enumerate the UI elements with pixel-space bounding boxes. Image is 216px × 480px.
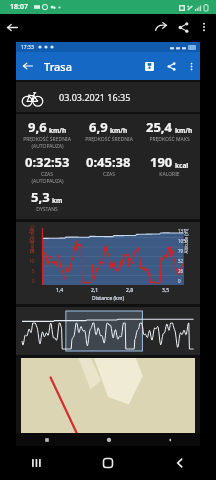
staticText: 52 [178,258,184,264]
button[interactable]: Share [160,55,182,77]
staticText: CZAS [103,171,115,178]
button[interactable]: Share [172,16,194,38]
staticText: 2,1 [91,287,99,294]
button[interactable]: 6,9 [78,118,139,143]
staticText: km/h [49,126,67,135]
button[interactable]: 0:45:38 [78,153,139,178]
staticText: (AUTOPAUZA) [31,143,64,150]
staticText: 0 [178,278,181,284]
button[interactable]: 0:32:53 [16,153,78,185]
button[interactable]: 25 [16,222,200,304]
button[interactable]: Navigate up [16,54,40,78]
button[interactable]: 5,3 [16,188,78,213]
button[interactable]: Back [0,15,24,39]
button[interactable]: Back [144,446,216,480]
staticText: 18:07 [10,2,28,12]
staticText: 9,6 [28,118,47,136]
staticText: 20 [29,238,35,244]
button[interactable]: 9,6 [16,118,78,150]
staticText: 5 [32,268,35,274]
staticText: (AUTOPAUZA) [31,178,64,185]
button[interactable]: Home [72,446,144,480]
button[interactable]: Back [139,433,200,446]
staticText: 26 [178,268,184,274]
staticText: 15 [29,248,35,254]
staticText: km [52,196,63,205]
button[interactable]: Forward [150,16,172,38]
button[interactable] [16,307,200,355]
staticText: PRĘDKOŚĆ ŚREDNIA [23,136,71,143]
staticText: Trasa [44,59,72,74]
staticText: 1,4 [56,287,64,294]
button[interactable]: 190 [139,153,200,178]
staticText: CZAS [41,171,53,178]
staticText: 10 [29,258,35,264]
staticText: 0:45:38 [86,153,131,171]
staticText: Distance (km) [92,295,124,302]
button[interactable]: More options [182,57,200,75]
staticText: 25 [29,228,35,234]
staticText: PRĘDKOŚĆ ŚREDNIA [85,136,133,143]
button[interactable]: 25,4 [139,118,200,143]
staticText: 5,3 [31,188,50,206]
staticText: 03.03.2021 16:35 [59,91,131,103]
button[interactable]: Home [78,433,139,446]
staticText: 0 [32,278,35,284]
staticText: DYSTANS [36,206,58,213]
staticText: 2,8 [126,287,134,294]
staticText: PRĘDKOŚĆ MAKS [149,136,190,143]
button[interactable]: Save [138,55,160,77]
staticText: km/h [175,126,193,135]
staticText: Altitude (m) [182,228,188,253]
button[interactable]: Recent apps [0,446,72,480]
button[interactable]: Recent apps [16,433,78,446]
staticText: 79 [178,248,184,254]
staticText: 0:32:53 [25,153,70,171]
button[interactable]: 03.03.2021 16:35 [16,82,200,112]
button[interactable]: More options [194,17,214,37]
staticText: km/h [110,126,128,135]
button[interactable] [16,358,200,433]
staticText: 6,9 [89,118,108,136]
staticText: 25,4 [146,118,173,136]
staticText: 131 [178,228,186,234]
staticText: KALORIE [159,171,180,178]
staticText: 190 [150,153,173,171]
staticText: 105 [178,238,186,244]
staticText: Speed (km/h) [28,224,34,253]
staticText: 3,5 [162,287,170,294]
staticText: 17:33 [21,44,34,51]
staticText: kcal [175,161,189,170]
